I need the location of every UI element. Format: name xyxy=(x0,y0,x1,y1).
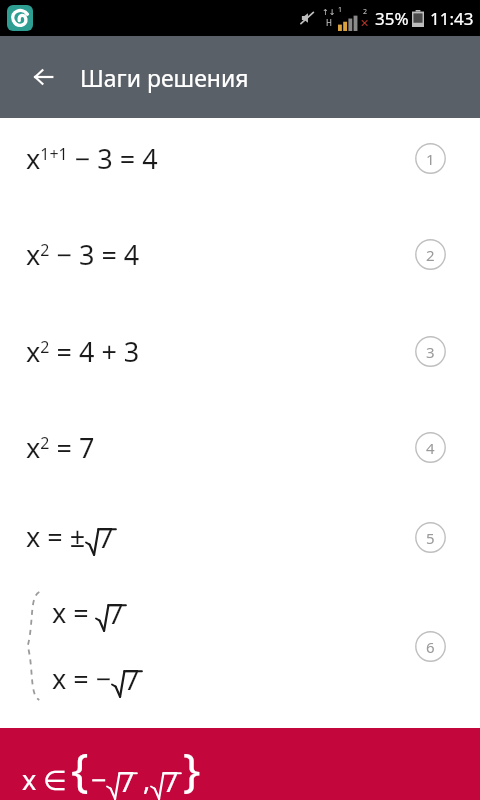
staticText: 2 xyxy=(426,245,435,265)
staticText: H xyxy=(326,17,332,28)
button[interactable]: x1+1 − 3 = 4 xyxy=(0,131,480,185)
staticText: 7 xyxy=(119,763,135,800)
staticText: 7 xyxy=(124,661,140,698)
staticText: { xyxy=(71,738,89,800)
staticText: x1+1 − 3 = 4 xyxy=(26,140,158,177)
staticText: 7 xyxy=(98,519,114,556)
staticText: Шаги решения xyxy=(80,62,249,93)
button[interactable]: x2 = 4 + 3 xyxy=(0,324,480,378)
staticText: x2 = 7 xyxy=(26,429,95,466)
button[interactable]: 3 xyxy=(415,336,446,367)
staticText: 4 xyxy=(426,438,435,458)
staticText: x = xyxy=(52,594,96,631)
staticText: x = − xyxy=(52,660,112,697)
staticText: , xyxy=(136,761,151,798)
staticText: 2 xyxy=(363,7,368,17)
staticText: 7 xyxy=(108,595,124,632)
staticText: 11:43 xyxy=(430,7,474,30)
staticText: 3 xyxy=(426,342,435,362)
button[interactable]: x2 = 7 xyxy=(0,420,480,474)
button[interactable]: Back xyxy=(22,55,66,99)
staticText: 1 xyxy=(426,149,435,169)
button[interactable]: 1 xyxy=(415,143,446,174)
button[interactable]: x = xyxy=(0,590,480,702)
button[interactable]: 2 xyxy=(415,239,446,270)
button[interactable]: 5 xyxy=(415,522,446,553)
button[interactable]: x2 − 3 = 4 xyxy=(0,227,480,281)
staticText: 6 xyxy=(426,637,435,657)
button[interactable]: 4 xyxy=(415,432,446,463)
staticText: ✕ xyxy=(360,17,370,30)
staticText: x ∈ xyxy=(22,761,67,798)
staticText: ↑↓ xyxy=(322,8,336,17)
staticText: x = ± xyxy=(26,518,86,555)
button[interactable]: 6 xyxy=(415,631,446,662)
staticText: 5 xyxy=(426,528,435,548)
staticText: x2 = 4 + 3 xyxy=(26,333,140,370)
staticText: 7 xyxy=(163,763,179,800)
button[interactable]: x = ± xyxy=(0,510,480,564)
staticText: − xyxy=(91,761,107,798)
button[interactable]: x ∈ xyxy=(0,728,480,800)
staticText: } xyxy=(183,738,201,800)
staticText: x2 − 3 = 4 xyxy=(26,236,140,273)
staticText: 35% xyxy=(375,7,409,30)
staticText: 1 xyxy=(338,5,343,15)
